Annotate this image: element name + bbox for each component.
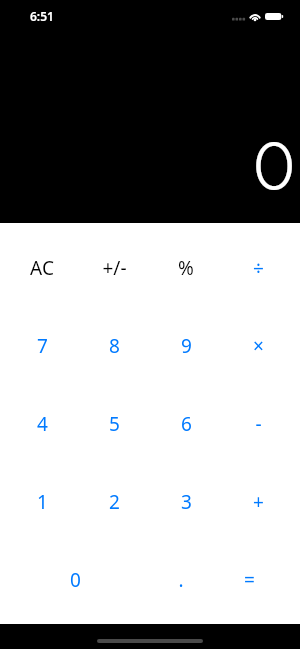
staticText: × bbox=[253, 333, 264, 359]
button[interactable]: 6 bbox=[150, 385, 222, 463]
staticText: 5 bbox=[109, 411, 120, 437]
staticText: . bbox=[178, 567, 184, 593]
staticText: 2 bbox=[109, 489, 120, 515]
staticText: 6 bbox=[181, 411, 192, 437]
staticText: 3 bbox=[181, 489, 192, 515]
staticText: = bbox=[244, 567, 255, 593]
button[interactable]: 7 bbox=[6, 307, 78, 385]
staticText: ÷ bbox=[253, 255, 264, 281]
button[interactable]: 3 bbox=[150, 463, 222, 541]
button[interactable]: 2 bbox=[78, 463, 150, 541]
button[interactable]: × bbox=[222, 307, 294, 385]
staticText: 0 bbox=[253, 126, 296, 205]
button[interactable]: +/- bbox=[78, 229, 150, 307]
button[interactable]: - bbox=[222, 385, 294, 463]
button[interactable]: AC bbox=[6, 229, 78, 307]
staticText: AC bbox=[30, 255, 54, 281]
staticText: 0 bbox=[70, 567, 81, 593]
other: Battery full bbox=[265, 13, 283, 20]
button[interactable]: + bbox=[222, 463, 294, 541]
staticText: - bbox=[255, 411, 262, 437]
other: Wi-Fi bbox=[249, 12, 261, 21]
button[interactable]: . bbox=[150, 541, 222, 619]
button[interactable]: % bbox=[150, 229, 222, 307]
staticText: +/- bbox=[102, 255, 127, 281]
button[interactable]: 0 bbox=[6, 541, 150, 619]
button[interactable]: = bbox=[222, 541, 294, 619]
staticText: 9 bbox=[181, 333, 192, 359]
button[interactable]: ÷ bbox=[222, 229, 294, 307]
staticText: 6:51 bbox=[30, 8, 54, 24]
staticText: 8 bbox=[109, 333, 120, 359]
staticText: % bbox=[178, 255, 194, 281]
other: Cellular signal bbox=[232, 12, 244, 21]
staticText: + bbox=[253, 489, 264, 515]
staticText: 7 bbox=[37, 333, 48, 359]
button[interactable]: 8 bbox=[78, 307, 150, 385]
staticText: 4 bbox=[37, 411, 48, 437]
staticText: 1 bbox=[37, 489, 48, 515]
button[interactable]: 4 bbox=[6, 385, 78, 463]
button[interactable]: 1 bbox=[6, 463, 78, 541]
button[interactable]: 9 bbox=[150, 307, 222, 385]
button[interactable]: 5 bbox=[78, 385, 150, 463]
